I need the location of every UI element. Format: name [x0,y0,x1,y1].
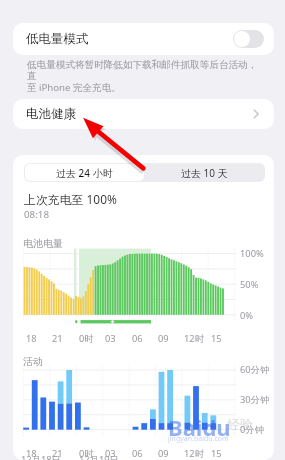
staticText: 0% [240,309,254,322]
staticText: jingyan.baidu.com [168,434,229,444]
button[interactable]: 过去 24 小时 [25,164,144,181]
staticText: 低电量模式将暂时降低如下载和邮件抓取等后台活动，直 至 iPhone 完全充电。 [27,59,263,93]
staticText: 15 [211,447,222,460]
staticText: 12时 [184,447,204,460]
staticText: 18 [26,447,37,460]
staticText: 12时 [184,332,204,345]
staticText: 21 [52,447,63,460]
button[interactable]: 低电量模式 [13,23,274,55]
staticText: 15 [211,332,222,345]
staticText: 活动 [23,355,43,368]
staticText: 过去 10 天 [181,166,228,180]
staticText: 12月18日 [21,453,61,460]
staticText: 经验 [227,416,253,432]
button[interactable]: 过去 10 天 [144,164,264,181]
staticText: 0分钟 [240,423,264,436]
staticText: 电池电量 [23,237,63,250]
staticText: 03 [105,447,116,460]
staticText: 60分钟 [240,363,270,376]
staticText: 0时 [79,447,94,460]
staticText: 上次充电至 100% [24,191,117,207]
staticText: 过去 24 小时 [56,166,113,180]
button[interactable]: 低电量模式开关 [233,30,264,48]
staticText: 06 [132,447,143,460]
staticText: 08:18 [24,208,50,221]
staticText: 12月19日 [79,453,119,460]
staticText: 低电量模式 [26,31,89,47]
staticText: 100% [240,247,264,260]
staticText: 50% [240,278,259,291]
staticText: 09 [158,447,169,460]
staticText: 18 [26,332,37,345]
staticText: 09 [158,332,169,345]
staticText: 电池健康 [26,106,76,122]
staticText: 0时 [79,332,94,345]
staticText: 21 [52,332,63,345]
staticText: 06 [132,332,143,345]
staticText: 03 [105,332,116,345]
button[interactable]: 电池健康 [13,99,274,129]
staticText: Baidu [168,412,231,442]
staticText: 30分钟 [240,393,270,406]
